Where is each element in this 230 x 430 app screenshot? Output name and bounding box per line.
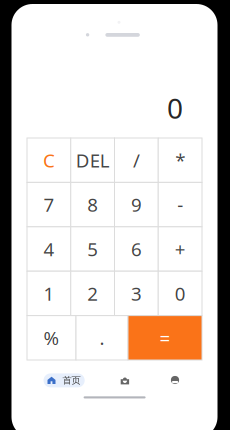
button[interactable]: 4	[27, 227, 71, 271]
staticText: %	[43, 325, 59, 350]
staticText: 7	[43, 192, 54, 217]
staticText: 9	[131, 192, 142, 217]
staticText: 2	[87, 281, 98, 306]
button[interactable]: 首页	[43, 373, 85, 387]
button[interactable]: 9	[114, 182, 158, 227]
staticText: DEL	[76, 148, 110, 173]
staticText: 0	[167, 89, 183, 127]
staticText: 首页	[62, 375, 80, 386]
staticText: =	[159, 325, 170, 350]
button[interactable]: +	[158, 227, 202, 271]
button[interactable]: *	[158, 138, 202, 182]
button[interactable]: 3	[114, 271, 158, 316]
staticText: /	[133, 148, 140, 173]
button[interactable]: %	[27, 316, 76, 360]
staticText: 3	[131, 281, 142, 306]
staticText: 8	[87, 192, 98, 217]
button[interactable]: -	[158, 182, 202, 227]
button[interactable]: Profile	[160, 370, 190, 390]
button[interactable]: 5	[71, 227, 115, 271]
button[interactable]: 6	[114, 227, 158, 271]
button[interactable]: =	[128, 316, 202, 360]
staticText: .	[99, 325, 104, 350]
button[interactable]: 2	[71, 271, 115, 316]
staticText: +	[175, 237, 186, 261]
button[interactable]: 8	[71, 182, 115, 227]
staticText: *	[175, 148, 185, 173]
staticText: 4	[43, 237, 54, 261]
button[interactable]: 0	[158, 271, 202, 316]
staticText: -	[177, 192, 183, 217]
button[interactable]: 7	[27, 182, 71, 227]
button[interactable]: DEL	[71, 138, 115, 182]
button[interactable]: Shop	[110, 370, 140, 390]
button[interactable]: 1	[27, 271, 71, 316]
staticText: 6	[131, 237, 142, 261]
button[interactable]: /	[114, 138, 158, 182]
staticText: C	[43, 148, 55, 173]
staticText: 1	[43, 281, 54, 306]
button[interactable]: C	[27, 138, 71, 182]
button[interactable]: .	[76, 316, 128, 360]
staticText: 0	[175, 281, 186, 306]
staticText: 5	[87, 237, 98, 261]
